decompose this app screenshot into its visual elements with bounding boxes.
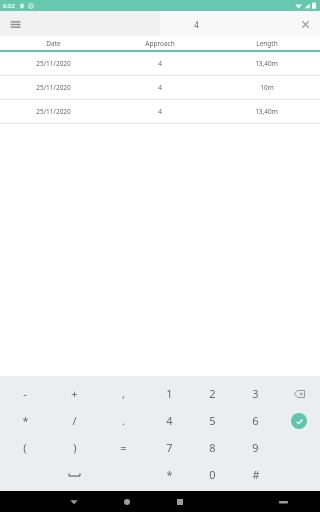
button[interactable]: 4 bbox=[148, 407, 191, 434]
button[interactable]: * bbox=[0, 407, 50, 434]
button[interactable]: 6 bbox=[234, 407, 277, 434]
button[interactable]: 3 bbox=[234, 380, 277, 407]
staticText: / bbox=[72, 413, 77, 428]
button[interactable]: = bbox=[99, 434, 148, 461]
button[interactable]: + bbox=[50, 380, 99, 407]
staticText: 25/11/2020 bbox=[36, 107, 71, 116]
button[interactable]: ) bbox=[50, 434, 99, 461]
staticText: 4 bbox=[194, 19, 199, 30]
staticText: = bbox=[120, 440, 127, 455]
staticText: 7 bbox=[166, 440, 173, 455]
staticText: 13,40m bbox=[255, 107, 278, 116]
staticText: . bbox=[122, 413, 125, 428]
button[interactable] bbox=[50, 461, 99, 488]
button[interactable]: 8 bbox=[191, 434, 234, 461]
button[interactable]: 0 bbox=[191, 461, 234, 488]
staticText: # bbox=[252, 467, 260, 482]
staticText: * bbox=[22, 413, 29, 428]
button[interactable]: , bbox=[99, 380, 148, 407]
button[interactable]: Open navigation menu bbox=[5, 14, 25, 34]
button[interactable]: 25/11/2020 bbox=[0, 52, 320, 76]
staticText: ( bbox=[23, 440, 27, 455]
staticText: Length bbox=[256, 39, 278, 48]
staticText: 6 bbox=[252, 413, 259, 428]
button[interactable]: . bbox=[99, 407, 148, 434]
staticText: * bbox=[166, 467, 173, 482]
staticText: 0 bbox=[209, 467, 216, 482]
button[interactable]: Recent apps bbox=[170, 492, 190, 512]
staticText: 25/11/2020 bbox=[36, 59, 71, 68]
button[interactable]: / bbox=[50, 407, 99, 434]
button[interactable]: Home bbox=[117, 492, 137, 512]
button[interactable]: 1 bbox=[148, 380, 191, 407]
button[interactable]: * bbox=[148, 461, 191, 488]
staticText: 10m bbox=[260, 83, 274, 92]
button[interactable]: Change keyboard bbox=[273, 492, 293, 512]
button[interactable]: Confirm input bbox=[291, 413, 307, 429]
button[interactable]: 25/11/2020 bbox=[0, 76, 320, 100]
staticText: , bbox=[122, 386, 125, 401]
button[interactable]: 5 bbox=[191, 407, 234, 434]
button[interactable]: 9 bbox=[234, 434, 277, 461]
staticText: 5 bbox=[209, 413, 216, 428]
staticText: Date bbox=[46, 39, 61, 48]
staticText: Approach bbox=[145, 39, 175, 48]
button[interactable]: 7 bbox=[148, 434, 191, 461]
button[interactable]: 2 bbox=[191, 380, 234, 407]
staticText: 8 bbox=[209, 440, 216, 455]
staticText: - bbox=[23, 386, 27, 401]
staticText: 13,40m bbox=[255, 59, 278, 68]
button[interactable]: # bbox=[234, 461, 277, 488]
staticText: 4 bbox=[166, 413, 173, 428]
staticText: 4 bbox=[158, 59, 162, 68]
staticText: 4 bbox=[158, 107, 162, 116]
staticText: 2 bbox=[209, 386, 216, 401]
button[interactable]: 25/11/2020 bbox=[0, 100, 320, 124]
staticText: 1 bbox=[166, 386, 173, 401]
button[interactable]: 4 bbox=[170, 14, 290, 34]
button[interactable]: - bbox=[0, 380, 50, 407]
button[interactable]: Back bbox=[64, 492, 84, 512]
button[interactable]: Clear search bbox=[295, 14, 315, 34]
staticText: 9 bbox=[252, 440, 259, 455]
staticText: 4 bbox=[158, 83, 162, 92]
button[interactable]: Backspace bbox=[289, 384, 309, 404]
staticText: ) bbox=[73, 440, 77, 455]
staticText: 25/11/2020 bbox=[36, 83, 71, 92]
staticText: 3 bbox=[252, 386, 259, 401]
button[interactable]: ( bbox=[0, 434, 50, 461]
staticText: + bbox=[71, 386, 78, 401]
staticText: 6:02 bbox=[3, 2, 15, 10]
